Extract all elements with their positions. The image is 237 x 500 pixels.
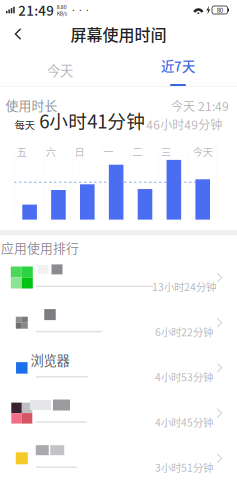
- staticText: 六: [46, 144, 56, 159]
- staticText: 13小时24分钟: [152, 279, 216, 294]
- staticText: 4小时45分钟: [155, 414, 213, 430]
- staticText: 80: [217, 6, 223, 14]
- staticText: 应用使用排行: [1, 238, 79, 257]
- staticText: 屏幕使用时间: [70, 22, 166, 46]
- staticText: 二: [132, 144, 142, 159]
- staticText: 8.80: [57, 3, 67, 10]
- button[interactable]: 浏览器: [0, 345, 237, 390]
- staticText: 今天: [47, 60, 73, 80]
- staticText: 3小时51分钟: [155, 460, 213, 475]
- staticText: 今天 21:49: [171, 97, 229, 114]
- staticText: 46小时49分钟: [146, 116, 222, 133]
- staticText: • • •: [70, 6, 90, 14]
- staticText: 每天: [15, 117, 35, 132]
- staticText: 日: [74, 144, 84, 159]
- staticText: 三: [161, 144, 171, 159]
- staticText: 6小时22分钟: [155, 324, 213, 339]
- button[interactable]: 6小时22分钟: [0, 300, 237, 345]
- staticText: 4小时53分钟: [155, 369, 213, 384]
- staticText: 今天: [193, 144, 213, 159]
- staticText: KB/s: [57, 9, 67, 17]
- button[interactable]: 13小时24分钟: [0, 255, 237, 300]
- staticText: 浏览器: [30, 350, 69, 369]
- staticText: 五: [17, 144, 27, 159]
- staticText: 一: [103, 144, 113, 159]
- staticText: 6小时41分钟: [39, 107, 145, 134]
- staticText: 使用时长: [6, 96, 58, 114]
- button[interactable]: 4小时45分钟: [0, 390, 237, 436]
- button[interactable]: 今天: [10, 55, 110, 85]
- button[interactable]: 3小时51分钟: [0, 436, 237, 481]
- staticText: 21:49: [18, 0, 54, 20]
- button[interactable]: 近7天: [128, 56, 228, 86]
- staticText: 近7天: [161, 56, 195, 75]
- button[interactable]: Back: [5, 21, 31, 47]
